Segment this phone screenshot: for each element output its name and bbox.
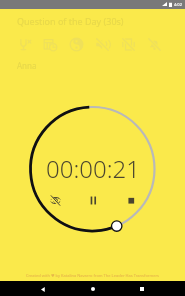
button[interactable]: Vibrate off <box>119 35 138 54</box>
button[interactable]: Voice off <box>15 35 34 54</box>
button[interactable]: Stop <box>122 191 140 209</box>
staticText: Question of the Day (30s) <box>17 15 124 27</box>
button[interactable]: Hide <box>46 191 64 209</box>
button[interactable]: Do not disturb <box>67 35 86 54</box>
staticText: Created with ♥ by Katalina Navarro from … <box>0 273 185 278</box>
button[interactable]: Back <box>36 282 50 296</box>
button[interactable]: Alarm off <box>145 35 164 54</box>
button[interactable]: Schedule <box>41 35 60 54</box>
staticText: Anna <box>17 60 37 71</box>
staticText: 00:00:21 <box>46 152 140 185</box>
button[interactable]: Pause <box>84 191 102 209</box>
button[interactable]: Mute <box>93 35 112 54</box>
staticText: 4:02 <box>174 2 182 7</box>
button[interactable]: Home <box>86 282 100 296</box>
button[interactable]: Recents <box>135 282 149 296</box>
